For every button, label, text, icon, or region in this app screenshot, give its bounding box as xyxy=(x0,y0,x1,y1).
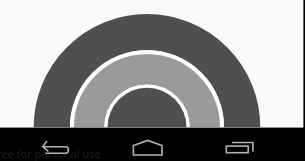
button[interactable]: Recent apps xyxy=(224,139,258,159)
button[interactable]: Home xyxy=(131,138,165,158)
button[interactable]: Back xyxy=(38,136,74,158)
staticText: ree for personal use xyxy=(0,146,101,161)
